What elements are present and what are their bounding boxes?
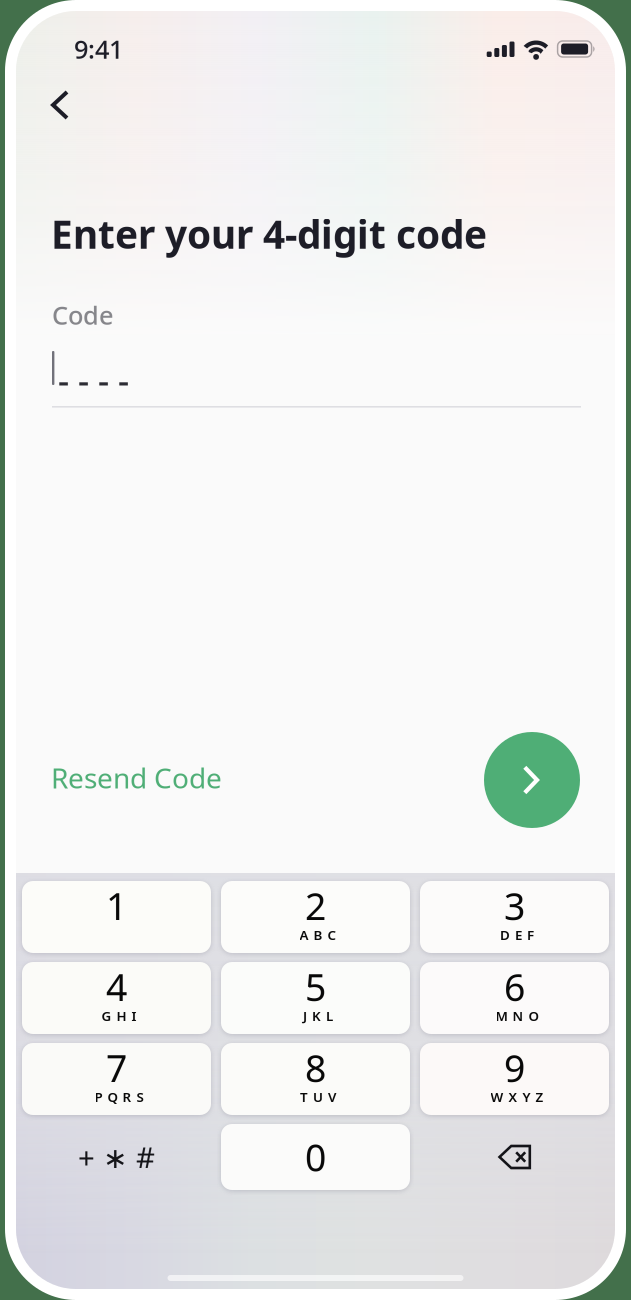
staticText: 7	[106, 1043, 127, 1093]
staticText: 9:41	[74, 32, 123, 66]
button[interactable]: 2	[221, 881, 410, 953]
staticText: ABC	[299, 926, 336, 944]
button[interactable]: 4	[22, 962, 211, 1034]
staticText: 2	[305, 881, 326, 931]
staticText: 5	[305, 962, 326, 1012]
button[interactable]: Continue	[484, 731, 580, 829]
button[interactable]: Delete	[420, 1124, 609, 1190]
staticText: 1	[106, 881, 127, 931]
button[interactable]: Resend Code	[49, 749, 224, 806]
staticText: 9	[504, 1043, 525, 1093]
staticText: PQRS	[94, 1088, 143, 1106]
button[interactable]: 9	[420, 1043, 609, 1115]
staticText: 0	[305, 1132, 326, 1182]
button[interactable]: 8	[221, 1043, 410, 1115]
button[interactable]: + ∗ #	[22, 1124, 211, 1190]
staticText: Code	[52, 298, 114, 332]
button[interactable]: 7	[22, 1043, 211, 1115]
button[interactable]: Back	[37, 76, 83, 134]
staticText: + ∗ #	[78, 1137, 155, 1176]
staticText: WXYZ	[490, 1088, 543, 1106]
staticText: 3	[504, 881, 525, 931]
staticText: DEF	[500, 926, 534, 944]
staticText: 8	[305, 1043, 326, 1093]
button[interactable]: 1	[22, 881, 211, 953]
button[interactable]: 6	[420, 962, 609, 1034]
staticText: MNO	[495, 1007, 538, 1025]
staticText: 6	[504, 962, 525, 1012]
staticText: JKL	[303, 1007, 333, 1025]
staticText: 4	[106, 962, 127, 1012]
staticText: TUV	[300, 1088, 336, 1106]
staticText: Enter your 4-digit code	[51, 208, 487, 259]
staticText: - - - -	[58, 357, 129, 403]
staticText: GHI	[101, 1007, 136, 1025]
button[interactable]: 3	[420, 881, 609, 953]
button[interactable]: 0	[221, 1124, 410, 1190]
button[interactable]: 5	[221, 962, 410, 1034]
staticText: Resend Code	[51, 759, 222, 796]
